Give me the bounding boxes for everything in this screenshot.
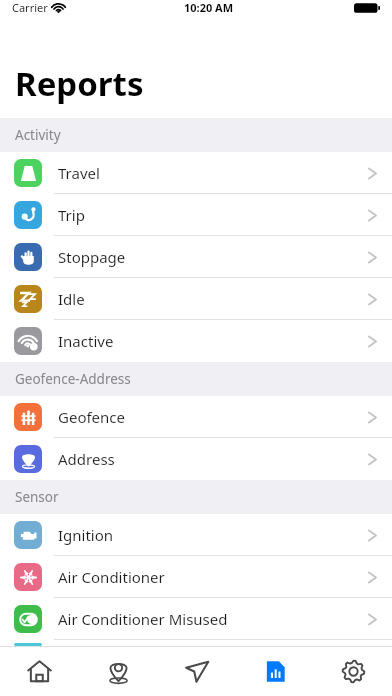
staticText: 10:20 AM xyxy=(184,0,234,15)
button[interactable]: Air Conditioner Misused xyxy=(0,598,392,640)
button[interactable]: Navigate xyxy=(158,647,236,696)
button[interactable]: Air Conditioner xyxy=(0,556,392,598)
staticText: Reports xyxy=(15,61,144,106)
button[interactable]: Home xyxy=(0,647,79,696)
button[interactable]: Idle xyxy=(0,278,392,320)
button[interactable]: Reports xyxy=(236,647,314,696)
button[interactable]: Inactive xyxy=(0,320,392,362)
staticText: Trip xyxy=(58,205,367,225)
staticText: Ignition xyxy=(58,525,367,545)
button[interactable] xyxy=(0,640,392,646)
button[interactable]: Stoppage xyxy=(0,236,392,278)
button[interactable]: Trip xyxy=(0,194,392,236)
staticText: Activity xyxy=(15,126,61,144)
staticText: Travel xyxy=(58,163,367,183)
staticText: Idle xyxy=(58,289,367,309)
staticText: Geofence xyxy=(58,407,367,427)
button[interactable]: Places xyxy=(79,647,158,696)
staticText: Stoppage xyxy=(58,247,367,267)
staticText: Sensor xyxy=(15,488,59,506)
button[interactable]: Geofence xyxy=(0,396,392,438)
staticText: Carrier xyxy=(12,0,48,15)
staticText: Geofence-Address xyxy=(15,370,131,388)
button[interactable]: Settings xyxy=(314,647,392,696)
button[interactable]: Address xyxy=(0,438,392,480)
button[interactable]: Ignition xyxy=(0,514,392,556)
button[interactable]: Travel xyxy=(0,152,392,194)
staticText: Inactive xyxy=(58,331,367,351)
staticText: Air Conditioner Misused xyxy=(58,609,367,629)
staticText: Address xyxy=(58,449,367,469)
staticText: Air Conditioner xyxy=(58,567,367,587)
